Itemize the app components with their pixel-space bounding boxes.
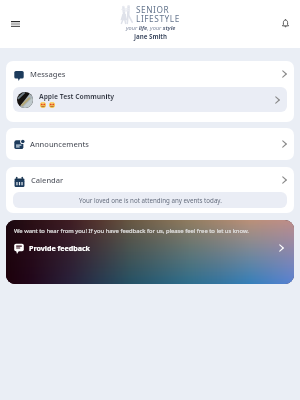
button[interactable]: Menu (5, 14, 26, 33)
staticText: your life, your style (126, 24, 176, 32)
button[interactable]: Notifications (276, 14, 295, 33)
staticText: Apple Test Community (39, 92, 115, 101)
staticText: Messages (30, 69, 66, 79)
staticText: Announcements (30, 139, 89, 149)
staticText: Calendar (31, 175, 64, 185)
staticText: Provide feedback (29, 243, 90, 253)
button[interactable]: Calendar (6, 167, 294, 192)
button[interactable]: Announcements (6, 128, 294, 160)
staticText: LIFESTYLE (136, 13, 180, 24)
staticText: We want to hear from you! If you have fe… (14, 227, 249, 235)
button[interactable]: We want to hear from you! If you have fe… (6, 220, 294, 284)
staticText: Jane Smith (134, 32, 168, 40)
button[interactable]: Apple Test Community (13, 87, 287, 112)
staticText: Your loved one is not attending any even… (79, 196, 222, 204)
button[interactable]: Messages (6, 61, 294, 87)
staticText: SENIOR (136, 4, 170, 15)
